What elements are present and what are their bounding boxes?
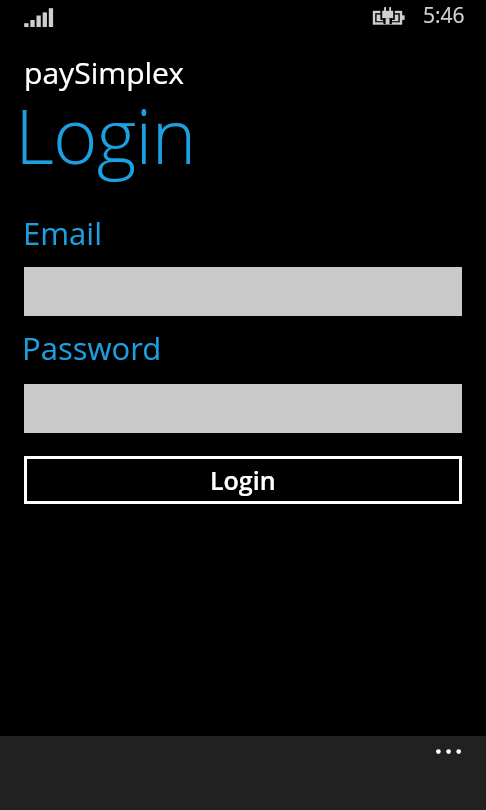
staticText: 5:46 xyxy=(423,1,465,30)
staticText: Login xyxy=(15,83,196,186)
staticText: Password xyxy=(22,327,162,369)
button[interactable]: Login xyxy=(24,456,462,504)
staticText: Login xyxy=(210,463,276,497)
staticText: Email xyxy=(23,212,102,254)
button[interactable] xyxy=(425,738,470,766)
staticText: paySimplex xyxy=(24,52,185,93)
